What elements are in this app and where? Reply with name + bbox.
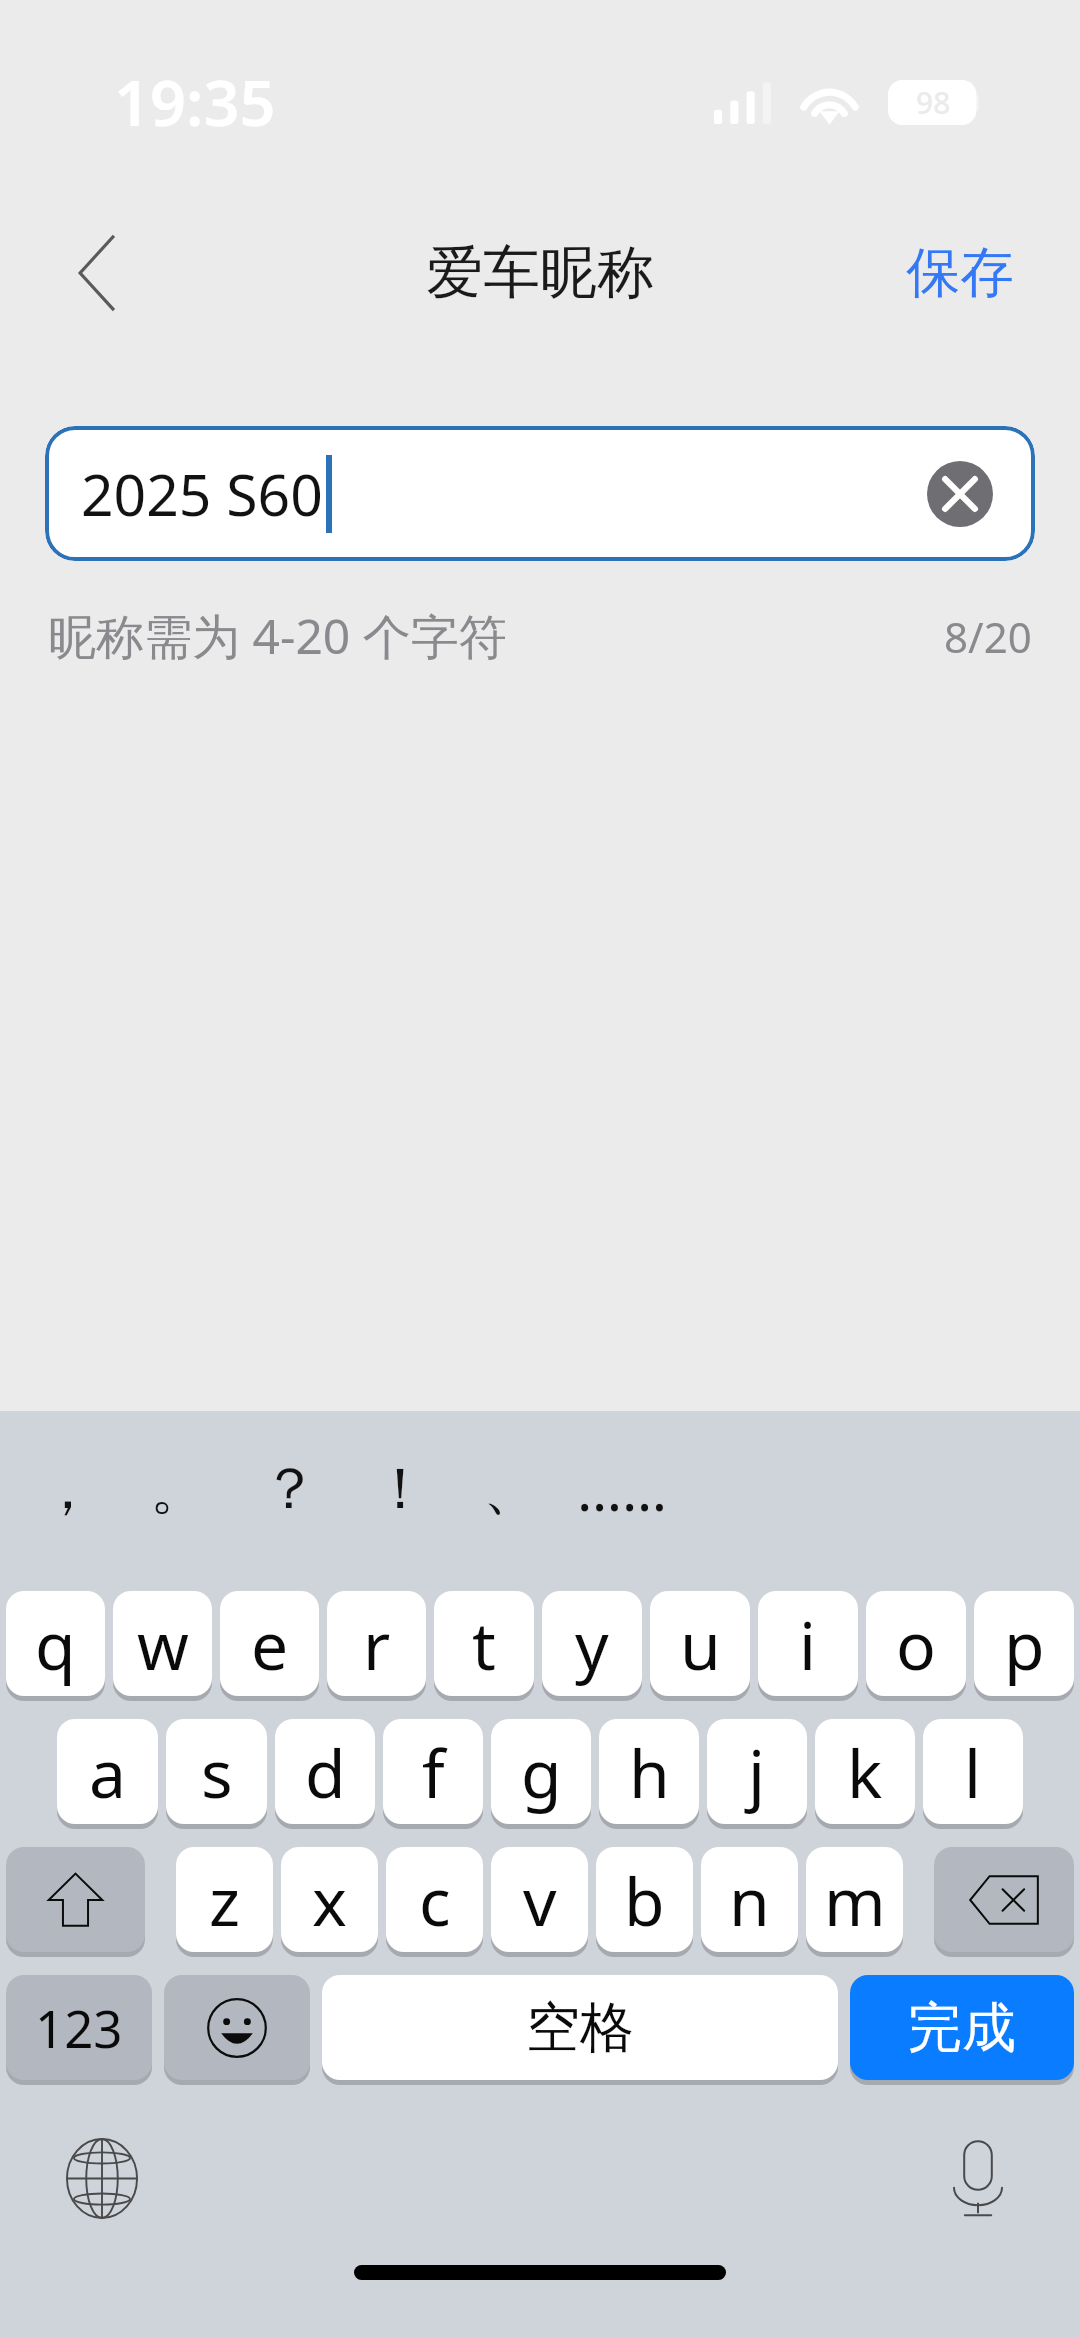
button[interactable]: b <box>596 1847 693 1952</box>
staticText: 昵称需为 4-20 个字符 <box>48 603 507 669</box>
staticText: s <box>201 1727 233 1817</box>
button[interactable]: y <box>542 1591 642 1696</box>
staticText: y <box>575 1599 609 1689</box>
button[interactable]: Back <box>18 195 174 351</box>
staticText: w <box>137 1599 189 1689</box>
button[interactable]: 。 <box>123 1411 234 1567</box>
staticText: 爱车昵称 <box>426 237 654 309</box>
staticText: 。 <box>150 1453 207 1525</box>
staticText: …… <box>577 1450 668 1528</box>
button[interactable]: e <box>220 1591 319 1696</box>
button[interactable]: j <box>707 1719 807 1824</box>
button[interactable]: h <box>599 1719 699 1824</box>
staticText: v <box>523 1855 557 1945</box>
button[interactable]: s <box>166 1719 267 1824</box>
button[interactable]: c <box>386 1847 483 1952</box>
staticText: c <box>419 1855 451 1945</box>
button[interactable]: z <box>176 1847 273 1952</box>
staticText: a <box>89 1727 127 1817</box>
staticText: i <box>799 1599 817 1689</box>
staticText: 2025 S60 <box>81 455 323 533</box>
button[interactable]: i <box>758 1591 858 1696</box>
button[interactable]: t <box>434 1591 534 1696</box>
button[interactable]: 空格 <box>322 1975 838 2080</box>
staticText: o <box>896 1599 936 1689</box>
button[interactable]: o <box>866 1591 966 1696</box>
staticText: 空格 <box>526 1994 634 2062</box>
button[interactable]: g <box>491 1719 591 1824</box>
staticText: ！ <box>372 1453 429 1525</box>
staticText: h <box>629 1727 670 1817</box>
button[interactable]: Backspace <box>934 1847 1074 1952</box>
staticText: u <box>680 1599 721 1689</box>
button[interactable]: r <box>327 1591 426 1696</box>
button[interactable]: q <box>6 1591 105 1696</box>
staticText: 、 <box>483 1453 540 1525</box>
button[interactable]: u <box>650 1591 750 1696</box>
staticText: x <box>312 1855 347 1945</box>
button[interactable]: Shift <box>6 1847 145 1952</box>
button[interactable]: a <box>57 1719 158 1824</box>
button[interactable]: 123 <box>6 1975 152 2080</box>
staticText: z <box>209 1855 241 1945</box>
staticText: e <box>251 1599 289 1689</box>
button[interactable]: f <box>383 1719 483 1824</box>
button[interactable]: ？ <box>234 1411 345 1567</box>
button[interactable]: x <box>281 1847 378 1952</box>
button[interactable]: ！ <box>345 1411 456 1567</box>
staticText: r <box>363 1599 391 1689</box>
button[interactable]: Clear text <box>915 449 1005 539</box>
button[interactable]: k <box>815 1719 915 1824</box>
staticText: ， <box>39 1453 96 1525</box>
staticText: 98 <box>916 82 951 123</box>
button[interactable]: Voice input <box>918 2118 1038 2238</box>
button[interactable]: ， <box>12 1411 123 1567</box>
staticText: m <box>824 1855 886 1945</box>
staticText: d <box>305 1727 346 1817</box>
button[interactable]: n <box>701 1847 798 1952</box>
staticText: l <box>964 1727 982 1817</box>
staticText: q <box>35 1599 76 1689</box>
button[interactable]: v <box>491 1847 588 1952</box>
button[interactable]: w <box>113 1591 212 1696</box>
staticText: 完成 <box>908 1994 1016 2062</box>
button[interactable]: …… <box>567 1411 678 1567</box>
staticText: f <box>422 1727 445 1817</box>
staticText: k <box>847 1727 883 1817</box>
button[interactable]: Emoji <box>164 1975 310 2080</box>
button[interactable]: m <box>806 1847 903 1952</box>
button[interactable]: l <box>923 1719 1023 1824</box>
staticText: b <box>624 1855 665 1945</box>
button[interactable]: Change keyboard language <box>42 2118 162 2238</box>
button[interactable]: 完成 <box>850 1975 1074 2080</box>
button[interactable]: 、 <box>456 1411 567 1567</box>
staticText: g <box>521 1727 562 1817</box>
button[interactable]: 2025 S60 <box>45 426 1035 561</box>
staticText: n <box>729 1855 770 1945</box>
button[interactable]: d <box>275 1719 375 1824</box>
staticText: ？ <box>261 1453 318 1525</box>
staticText: 123 <box>35 1993 123 2062</box>
staticText: 保存 <box>906 239 1014 307</box>
staticText: t <box>472 1599 496 1689</box>
button[interactable]: 保存 <box>840 209 1080 337</box>
staticText: j <box>748 1727 766 1817</box>
staticText: 19:35 <box>114 59 276 145</box>
staticText: 8/20 <box>944 608 1032 665</box>
button[interactable]: p <box>974 1591 1074 1696</box>
staticText: p <box>1004 1599 1045 1689</box>
